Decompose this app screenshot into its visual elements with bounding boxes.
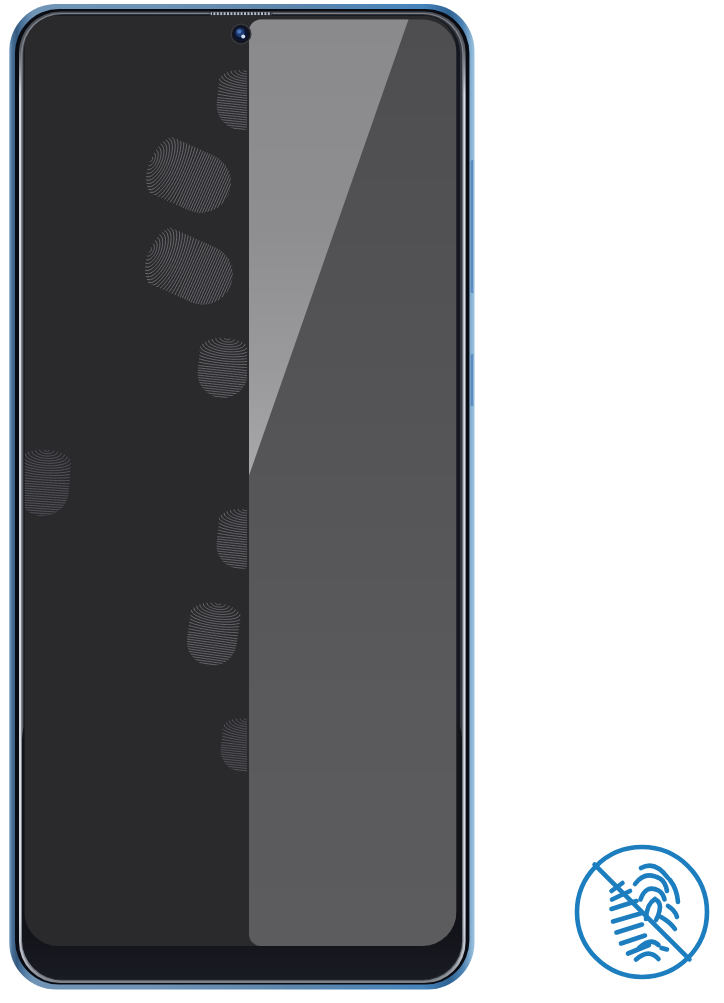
button[interactable]: Phone with tempered glass screen protect… [9, 4, 474, 990]
button[interactable]: Anti-fingerprint coating [574, 844, 710, 980]
